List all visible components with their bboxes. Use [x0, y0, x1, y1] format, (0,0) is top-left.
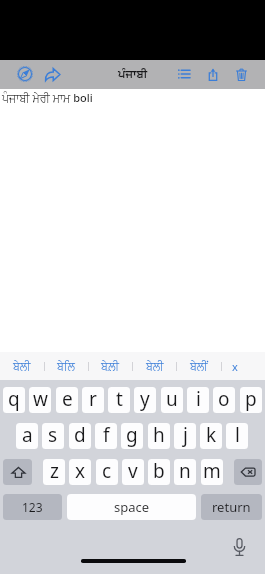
staticText: g — [126, 423, 138, 448]
button[interactable]: 123 — [3, 494, 62, 520]
button[interactable]: q — [3, 387, 25, 413]
staticText: space — [114, 498, 150, 516]
button[interactable]: Delete — [234, 61, 249, 87]
button[interactable]: Forward — [42, 61, 63, 87]
button[interactable]: e — [56, 387, 78, 413]
button[interactable]: i — [187, 387, 209, 413]
button[interactable]: x — [69, 459, 91, 485]
staticText: ਪੰਜਾਬੀ — [118, 69, 148, 80]
staticText: e — [62, 387, 73, 412]
staticText: p — [245, 387, 257, 412]
button[interactable]: space — [67, 494, 196, 520]
button[interactable]: return — [201, 494, 262, 520]
button[interactable]: z — [43, 459, 65, 485]
staticText: ਬੇਲਿ — [57, 361, 75, 372]
button[interactable]: s — [42, 423, 64, 449]
button[interactable]: u — [161, 387, 183, 413]
button[interactable]: h — [148, 423, 170, 449]
staticText: z — [50, 459, 59, 484]
button[interactable]: ਬੇਲਿ — [44, 352, 88, 380]
button[interactable]: j — [174, 423, 196, 449]
button[interactable]: g — [121, 423, 143, 449]
staticText: t — [116, 387, 123, 412]
staticText: c — [102, 459, 112, 484]
button[interactable]: w — [29, 387, 51, 413]
staticText: s — [48, 423, 58, 448]
button[interactable]: r — [82, 387, 104, 413]
button[interactable]: t — [108, 387, 130, 413]
button[interactable]: o — [213, 387, 235, 413]
staticText: b — [153, 459, 165, 484]
button[interactable]: v — [122, 459, 144, 485]
button[interactable]: d — [69, 423, 91, 449]
button[interactable]: a — [16, 423, 38, 449]
button[interactable]: ਬੇਲ਼ੀ — [88, 352, 132, 380]
staticText: v — [128, 459, 138, 484]
staticText: j — [183, 423, 188, 448]
button[interactable]: b — [148, 459, 170, 485]
staticText: ਬੇਲੀ — [13, 361, 31, 372]
staticText: n — [179, 459, 191, 484]
staticText: 123 — [22, 499, 43, 515]
staticText: w — [33, 387, 48, 412]
staticText: q — [8, 387, 20, 412]
button[interactable]: k — [200, 423, 222, 449]
button[interactable]: Shift — [3, 459, 32, 485]
staticText: h — [153, 423, 165, 448]
button[interactable]: f — [95, 423, 117, 449]
button[interactable]: y — [134, 387, 156, 413]
staticText: d — [74, 423, 86, 448]
button[interactable]: ਬੇਲੀਂ — [177, 352, 221, 380]
button[interactable]: n — [174, 459, 196, 485]
button[interactable]: Safari — [14, 61, 35, 87]
button[interactable]: Backspace — [234, 459, 262, 485]
button[interactable]: p — [240, 387, 262, 413]
button[interactable]: ਬੇਲੀ — [0, 352, 44, 380]
staticText: ਬੇਲੀਂ — [190, 361, 208, 372]
staticText: f — [103, 423, 110, 448]
staticText: x — [75, 459, 86, 484]
button[interactable]: c — [96, 459, 118, 485]
staticText: ਪੰਜਾਬੀ ਮੇਰੀ ਮਾਮ boli — [2, 90, 93, 105]
staticText: return — [212, 498, 251, 516]
staticText: ਬੇਲ਼ੀ — [101, 361, 120, 372]
staticText: k — [206, 423, 217, 448]
staticText: o — [218, 387, 230, 412]
staticText: x — [232, 359, 238, 374]
button[interactable]: Dictation — [229, 536, 249, 558]
staticText: l — [235, 423, 240, 448]
button[interactable]: l — [226, 423, 248, 449]
button[interactable]: Share — [205, 61, 220, 87]
staticText: y — [140, 387, 150, 412]
staticText: ਬੇਲੀ — [146, 361, 164, 372]
staticText: i — [196, 387, 201, 412]
button[interactable]: Clear — [224, 352, 246, 380]
staticText: a — [22, 423, 33, 448]
staticText: m — [203, 459, 221, 484]
button[interactable]: ਬੇਲੀ — [133, 352, 177, 380]
button[interactable]: Bookmarks — [176, 61, 192, 87]
button[interactable]: m — [201, 459, 223, 485]
staticText: r — [89, 387, 97, 412]
staticText: u — [166, 387, 178, 412]
